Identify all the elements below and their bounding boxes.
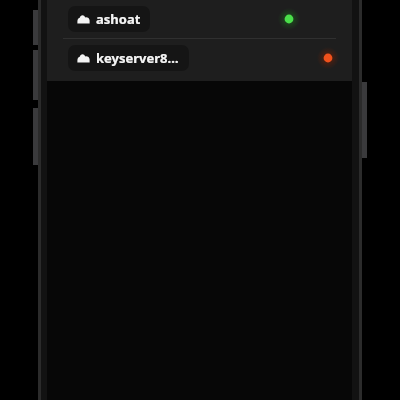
- button[interactable]: ashoat: [47, 0, 352, 38]
- staticText: ashoat: [96, 10, 141, 28]
- staticText: keyserver8941C104-7E79-4F43-…: [96, 49, 180, 67]
- button[interactable]: keyserver8941C104-7E79-4F43-…: [47, 39, 352, 77]
